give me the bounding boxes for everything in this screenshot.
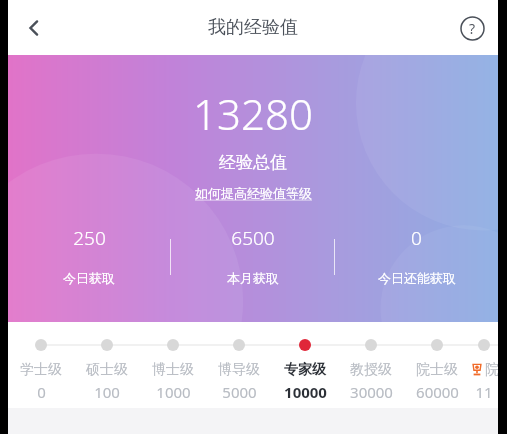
button[interactable]: 院士级: [404, 322, 470, 402]
button[interactable]: 250: [8, 225, 170, 286]
button[interactable]: 6500: [171, 225, 334, 286]
staticText: 6500: [231, 225, 275, 251]
button[interactable]: 博导级: [206, 322, 272, 402]
staticText: 学士级: [20, 361, 62, 379]
staticText: 院: [485, 361, 498, 379]
button[interactable]: Help: [446, 2, 498, 54]
staticText: 今日获取: [63, 270, 115, 286]
button[interactable]: 教授级: [338, 322, 404, 402]
staticText: 0: [37, 382, 46, 402]
staticText: 经验总值: [219, 152, 287, 173]
staticText: 博导级: [218, 361, 260, 379]
staticText: 60000: [416, 382, 459, 402]
button[interactable]: 博士级: [140, 322, 206, 402]
button[interactable]: 0: [335, 225, 498, 286]
staticText: ?: [469, 19, 476, 38]
staticText: 院士级: [416, 361, 458, 379]
button[interactable]: 专家级: [272, 322, 338, 402]
button[interactable]: Back: [8, 2, 60, 54]
staticText: 1000: [156, 382, 191, 402]
staticText: 13280: [193, 85, 313, 142]
staticText: 250: [73, 225, 106, 251]
button[interactable]: 学士级: [8, 322, 74, 402]
staticText: 硕士级: [86, 361, 128, 379]
staticText: 本月获取: [227, 270, 279, 286]
staticText: 我的经验值: [208, 16, 298, 39]
button[interactable]: 如何提高经验值等级: [191, 183, 316, 203]
staticText: 0: [411, 225, 422, 251]
staticText: 专家级: [284, 361, 326, 379]
staticText: 11: [475, 382, 493, 402]
button[interactable]: 院: [470, 322, 498, 402]
staticText: 教授级: [350, 361, 392, 379]
staticText: 今日还能获取: [378, 270, 456, 286]
staticText: 10000: [284, 382, 327, 402]
staticText: 如何提高经验值等级: [195, 185, 312, 201]
button[interactable]: 硕士级: [74, 322, 140, 402]
staticText: 100: [94, 382, 120, 402]
staticText: 30000: [350, 382, 393, 402]
staticText: 博士级: [152, 361, 194, 379]
staticText: 5000: [222, 382, 257, 402]
